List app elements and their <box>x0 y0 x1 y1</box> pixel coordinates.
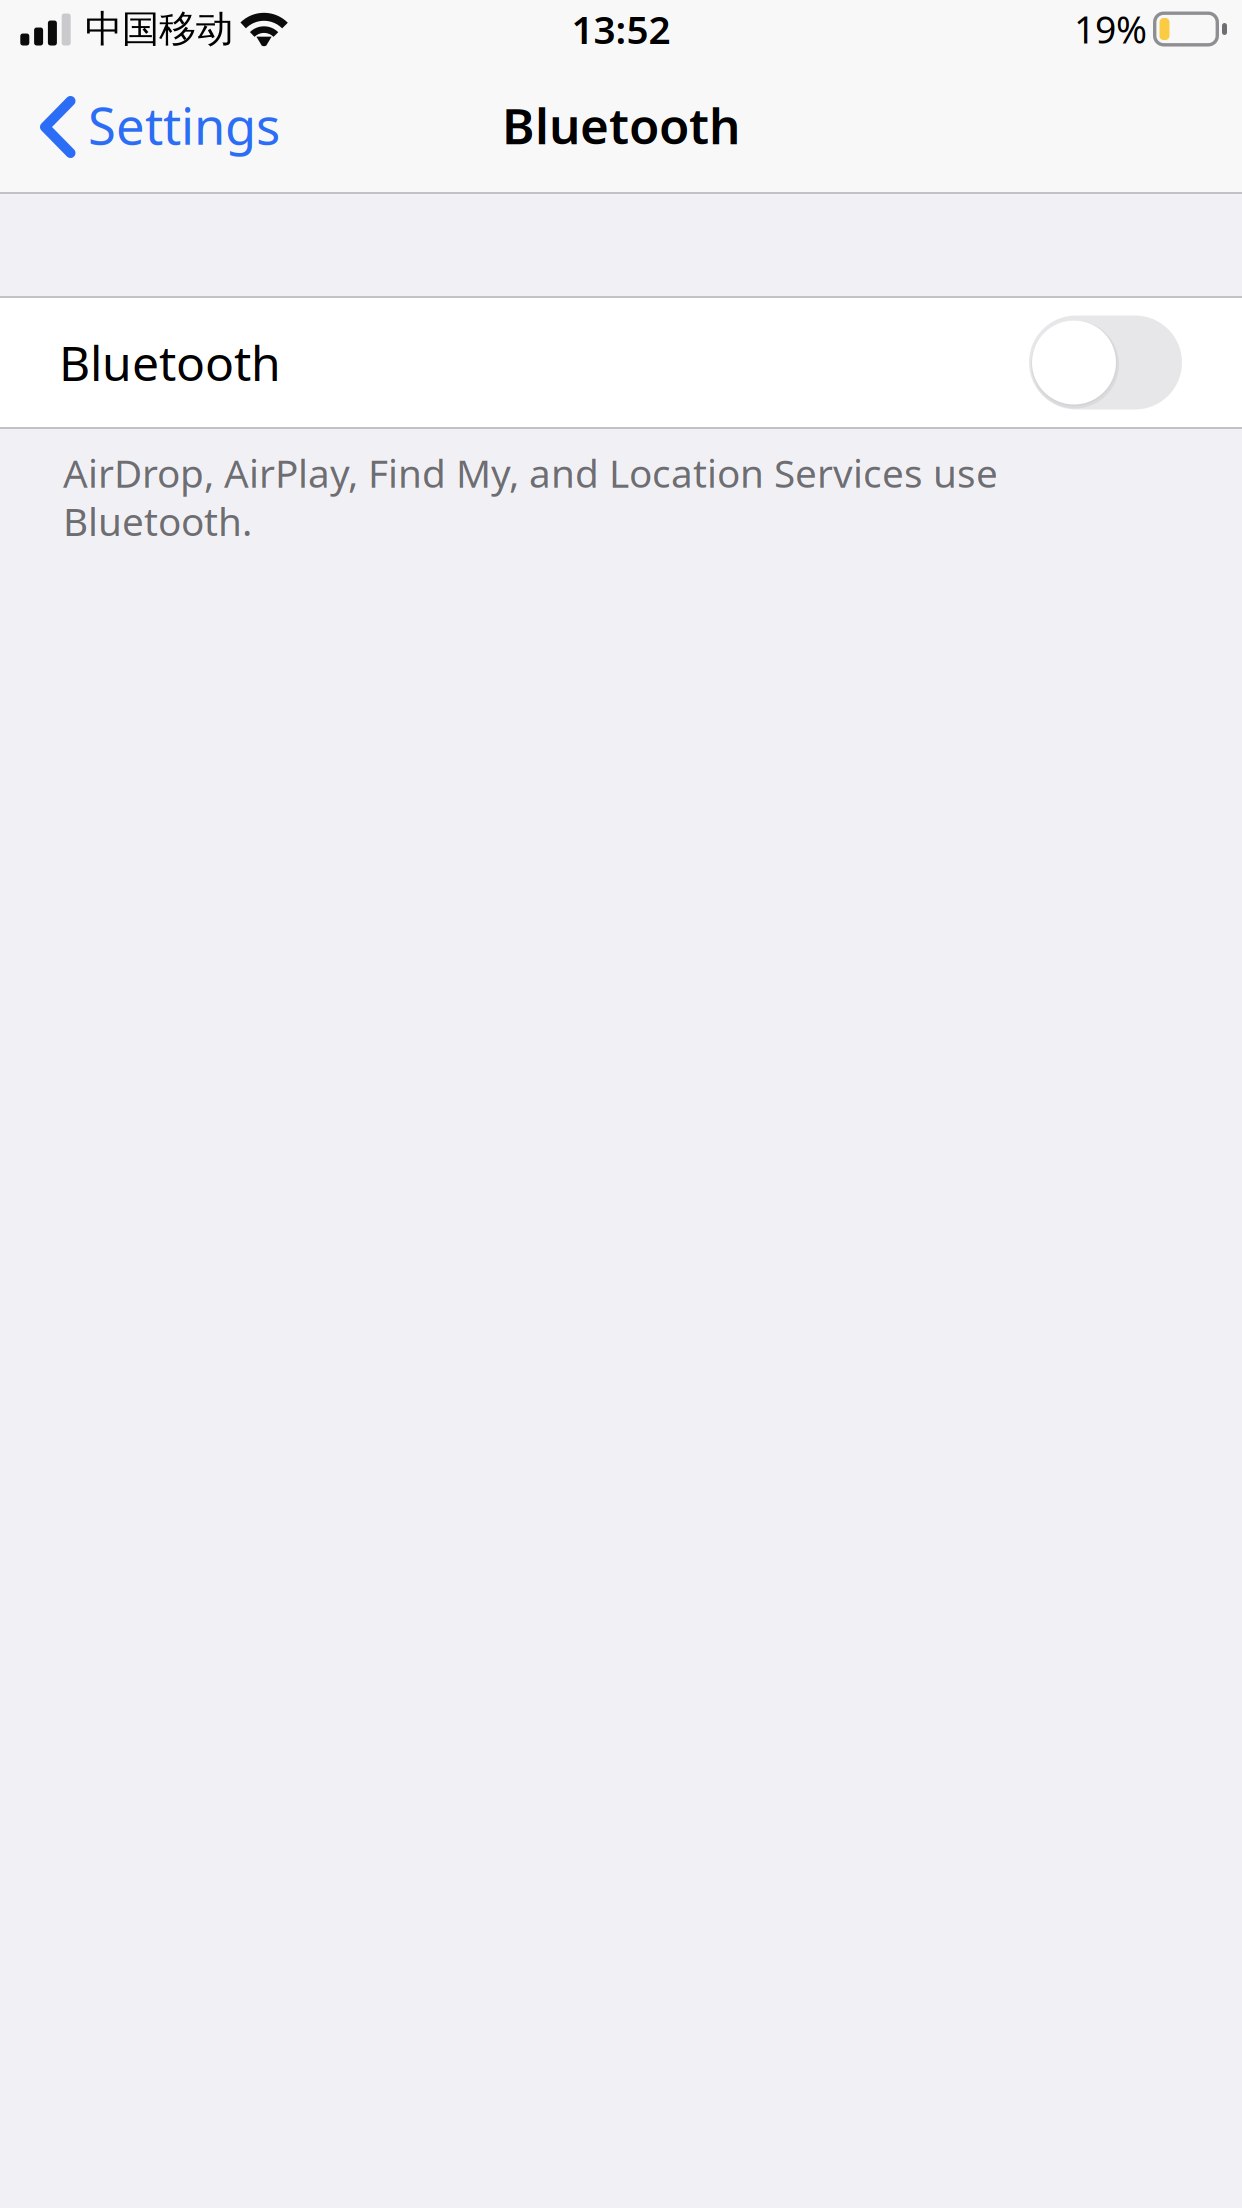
staticText: 13:52 <box>571 3 670 55</box>
staticText: 19% <box>1074 4 1147 54</box>
button[interactable]: Settings <box>0 58 304 192</box>
staticText: 中国移动 <box>85 6 233 52</box>
staticText: Bluetooth <box>59 331 281 394</box>
button[interactable]: Bluetooth <box>0 298 1242 427</box>
staticText: AirDrop, AirPlay, Find My, and Location … <box>63 447 998 498</box>
staticText: Bluetooth <box>502 92 740 158</box>
staticText: Bluetooth. <box>63 495 252 547</box>
button[interactable]: Off <box>1029 315 1182 409</box>
staticText: Settings <box>88 91 280 159</box>
